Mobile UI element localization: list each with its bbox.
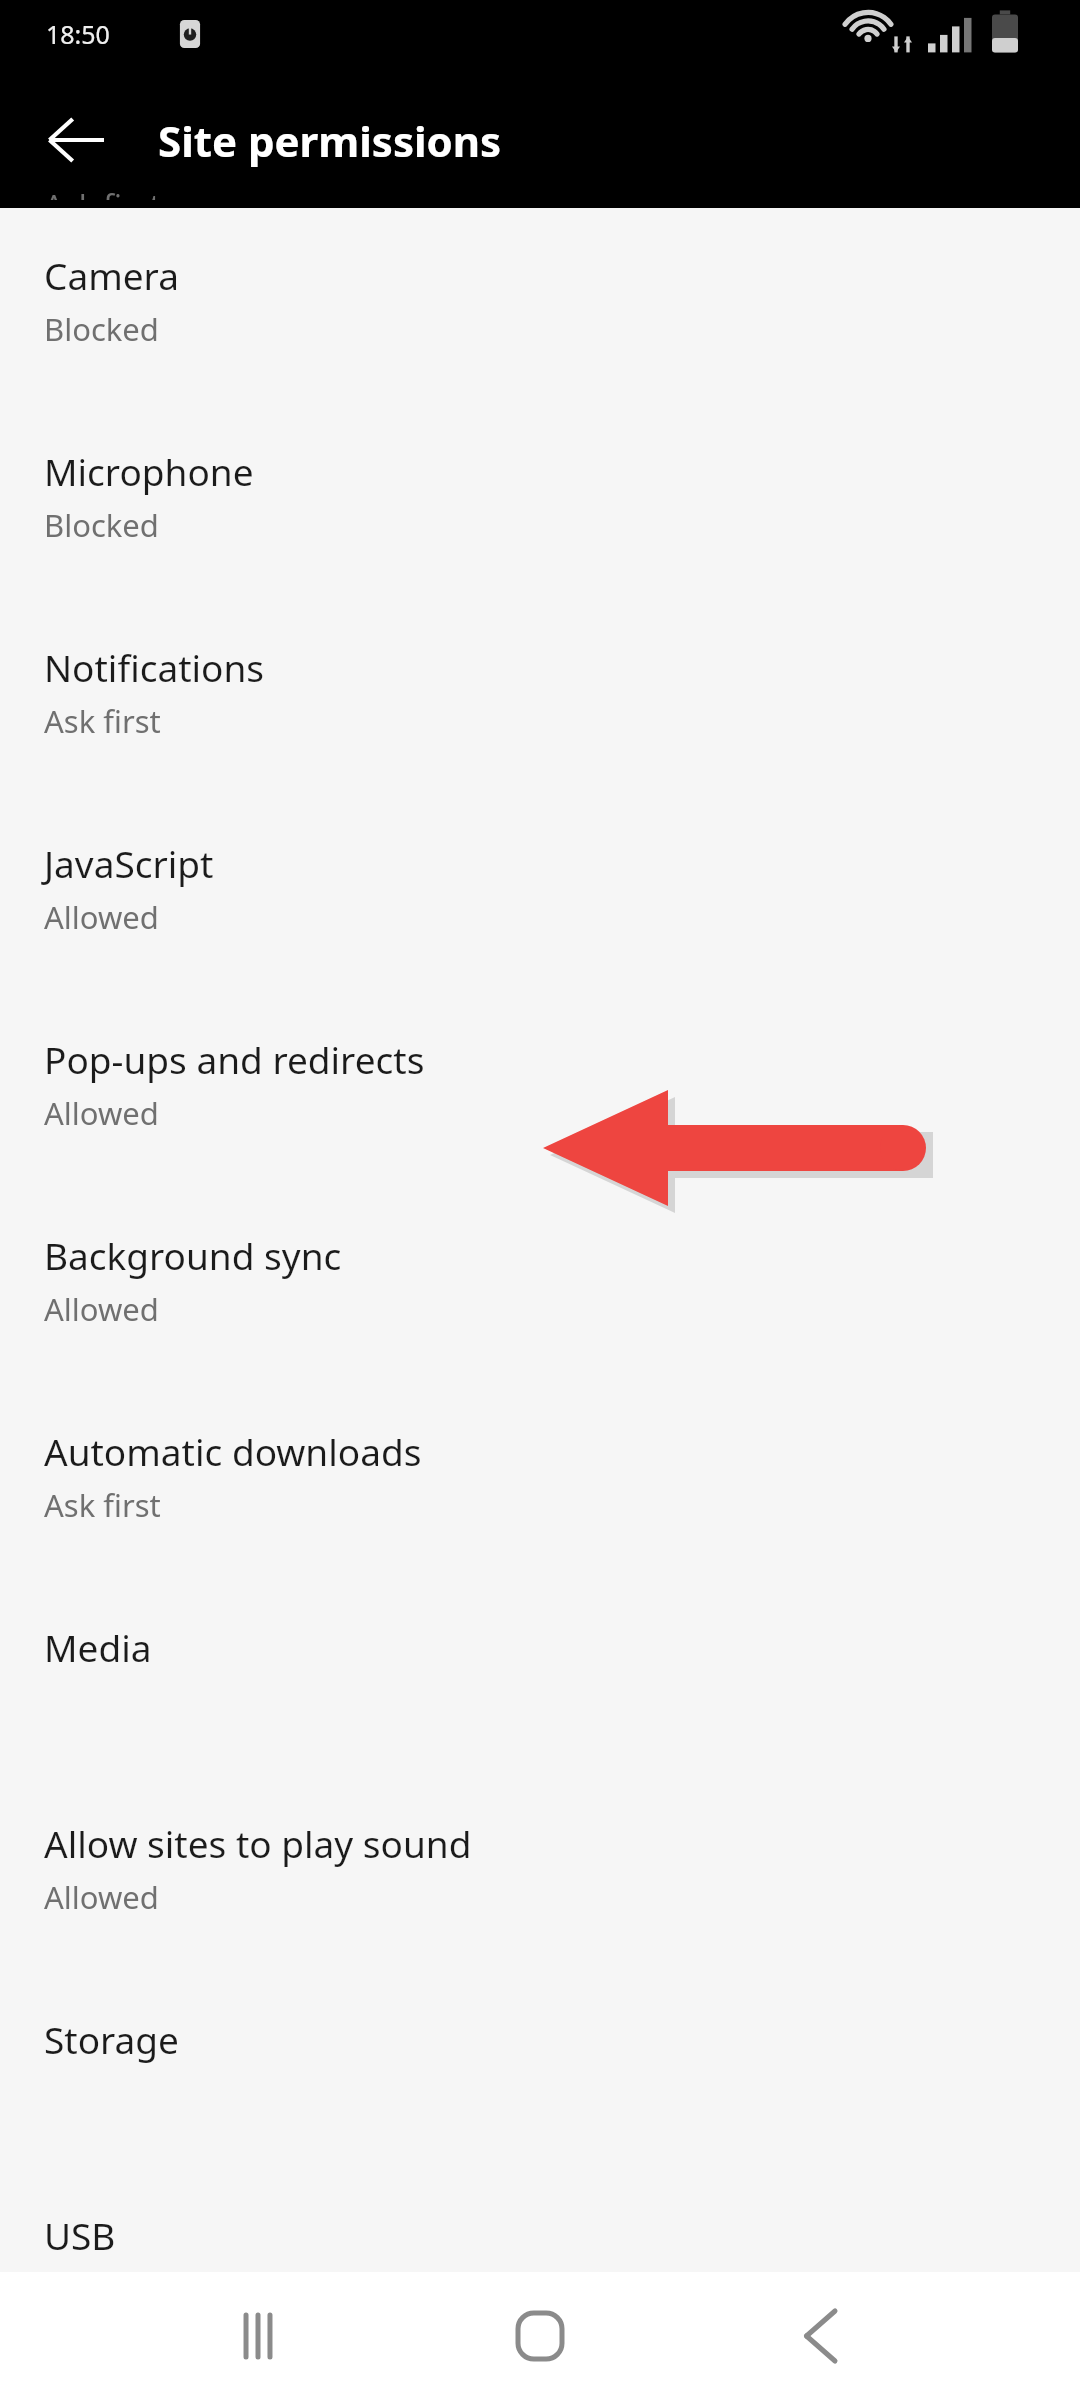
staticText: Ask first bbox=[44, 2268, 161, 2298]
staticText: Media bbox=[44, 1622, 152, 1672]
staticText: JavaScript bbox=[44, 838, 214, 888]
staticText: Camera bbox=[44, 250, 179, 300]
staticText: Allowed bbox=[44, 1092, 159, 1134]
staticText: Allowed bbox=[44, 1876, 159, 1918]
button[interactable]: Automatic downloads bbox=[0, 1400, 1080, 1596]
button[interactable]: Recent apps bbox=[198, 2276, 318, 2396]
staticText: Site permissions bbox=[158, 112, 502, 169]
staticText: Notifications bbox=[44, 642, 265, 692]
staticText: Allowed bbox=[44, 896, 159, 938]
staticText: Pop-ups and redirects bbox=[44, 1034, 425, 1084]
button[interactable]: Allow sites to play sound bbox=[0, 1792, 1080, 1988]
staticText: Storage bbox=[44, 2014, 179, 2064]
staticText: Allowed bbox=[44, 1288, 159, 1330]
button[interactable]: Back bbox=[760, 2276, 880, 2396]
staticText: Automatic downloads bbox=[44, 1426, 422, 1476]
button[interactable]: JavaScript bbox=[0, 812, 1080, 1008]
staticText: Blocked bbox=[44, 504, 159, 546]
button[interactable]: Storage bbox=[0, 1988, 1080, 2184]
staticText: Ask first bbox=[44, 1484, 161, 1526]
button[interactable]: Background sync bbox=[0, 1204, 1080, 1400]
button[interactable]: Pop-ups and redirects bbox=[0, 1008, 1080, 1204]
button[interactable]: Notifications bbox=[0, 616, 1080, 812]
staticText: USB bbox=[44, 2210, 116, 2260]
staticText: Allow sites to play sound bbox=[44, 1818, 472, 1868]
staticText: 18:50 bbox=[46, 17, 110, 51]
button[interactable]: Camera bbox=[0, 224, 1080, 420]
staticText: Microphone bbox=[44, 446, 254, 496]
staticText: Ask first bbox=[44, 184, 161, 200]
button[interactable]: Home bbox=[480, 2276, 600, 2396]
staticText: Background sync bbox=[44, 1230, 342, 1280]
button[interactable]: Microphone bbox=[0, 420, 1080, 616]
button[interactable]: USB bbox=[0, 2184, 1080, 2272]
staticText: Blocked bbox=[44, 308, 159, 350]
button[interactable]: Media bbox=[0, 1596, 1080, 1792]
staticText: Ask first bbox=[44, 700, 161, 742]
button[interactable]: Back bbox=[20, 85, 130, 195]
